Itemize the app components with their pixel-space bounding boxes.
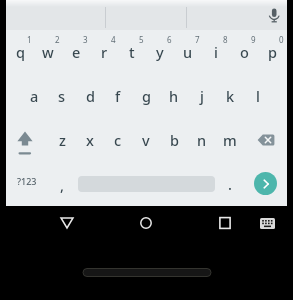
staticText: u [183, 42, 193, 62]
staticText: 1 [27, 34, 32, 45]
button[interactable] [244, 118, 287, 162]
staticText: p [268, 42, 277, 62]
staticText: 0 [279, 34, 284, 45]
button[interactable] [261, 0, 287, 30]
button[interactable]: e [62, 30, 90, 74]
button[interactable]: l [244, 74, 272, 118]
button[interactable]: b [160, 118, 188, 162]
staticText: k [226, 86, 235, 106]
staticText: i [214, 42, 218, 62]
button[interactable]: q [6, 30, 34, 74]
button[interactable]: z [48, 118, 76, 162]
button[interactable]: d [76, 74, 104, 118]
staticText: j [200, 86, 204, 106]
button[interactable] [6, 0, 105, 30]
staticText: w [42, 42, 54, 62]
button[interactable]: p [258, 30, 286, 74]
staticText: , [60, 175, 64, 195]
button[interactable] [105, 0, 186, 30]
staticText: f [115, 86, 121, 106]
button[interactable]: a [20, 74, 48, 118]
button[interactable]: f [104, 74, 132, 118]
staticText: m [223, 130, 237, 150]
staticText: o [240, 42, 249, 62]
staticText: 9 [251, 34, 256, 45]
staticText: 6 [167, 34, 172, 45]
staticText: l [256, 86, 260, 106]
button[interactable] [252, 206, 282, 240]
button[interactable]: h [160, 74, 188, 118]
staticText: y [156, 42, 164, 62]
button[interactable]: n [188, 118, 216, 162]
button[interactable]: u [174, 30, 202, 74]
button[interactable] [186, 0, 256, 30]
button[interactable]: t [118, 30, 146, 74]
staticText: t [129, 42, 135, 62]
staticText: v [142, 130, 150, 150]
staticText: x [86, 130, 94, 150]
staticText: . [228, 174, 232, 194]
staticText: n [197, 130, 207, 150]
button[interactable]: m [216, 118, 244, 162]
button[interactable]: , [48, 163, 76, 207]
staticText: 3 [83, 34, 88, 45]
button[interactable]: g [132, 74, 160, 118]
button[interactable] [6, 118, 48, 162]
button[interactable]: o [230, 30, 258, 74]
button[interactable] [76, 162, 216, 206]
staticText: 4 [111, 34, 116, 45]
staticText: 8 [223, 34, 228, 45]
button[interactable] [244, 162, 287, 206]
button[interactable]: w [34, 30, 62, 74]
staticText: g [142, 86, 151, 106]
staticText: h [169, 86, 179, 106]
staticText: 2 [55, 34, 60, 45]
button[interactable]: y [146, 30, 174, 74]
staticText: 5 [139, 34, 144, 45]
button[interactable]: c [104, 118, 132, 162]
staticText: r [101, 42, 108, 62]
staticText: 7 [195, 34, 200, 45]
button[interactable]: k [216, 74, 244, 118]
staticText: c [114, 130, 122, 150]
staticText: e [72, 42, 81, 62]
button[interactable] [126, 206, 166, 240]
button[interactable]: s [48, 74, 76, 118]
staticText: b [170, 130, 179, 150]
button[interactable]: j [188, 74, 216, 118]
staticText: z [59, 130, 66, 150]
staticText: a [30, 86, 39, 106]
button[interactable] [205, 206, 245, 240]
staticText: d [86, 86, 95, 106]
button[interactable] [47, 206, 87, 240]
staticText: ?123 [17, 175, 37, 187]
button[interactable]: i [202, 30, 230, 74]
staticText: s [58, 86, 66, 106]
button[interactable]: x [76, 118, 104, 162]
button[interactable]: ?123 [6, 159, 48, 203]
button[interactable]: r [90, 30, 118, 74]
staticText: q [16, 42, 25, 62]
button[interactable]: v [132, 118, 160, 162]
button[interactable]: . [216, 162, 244, 206]
